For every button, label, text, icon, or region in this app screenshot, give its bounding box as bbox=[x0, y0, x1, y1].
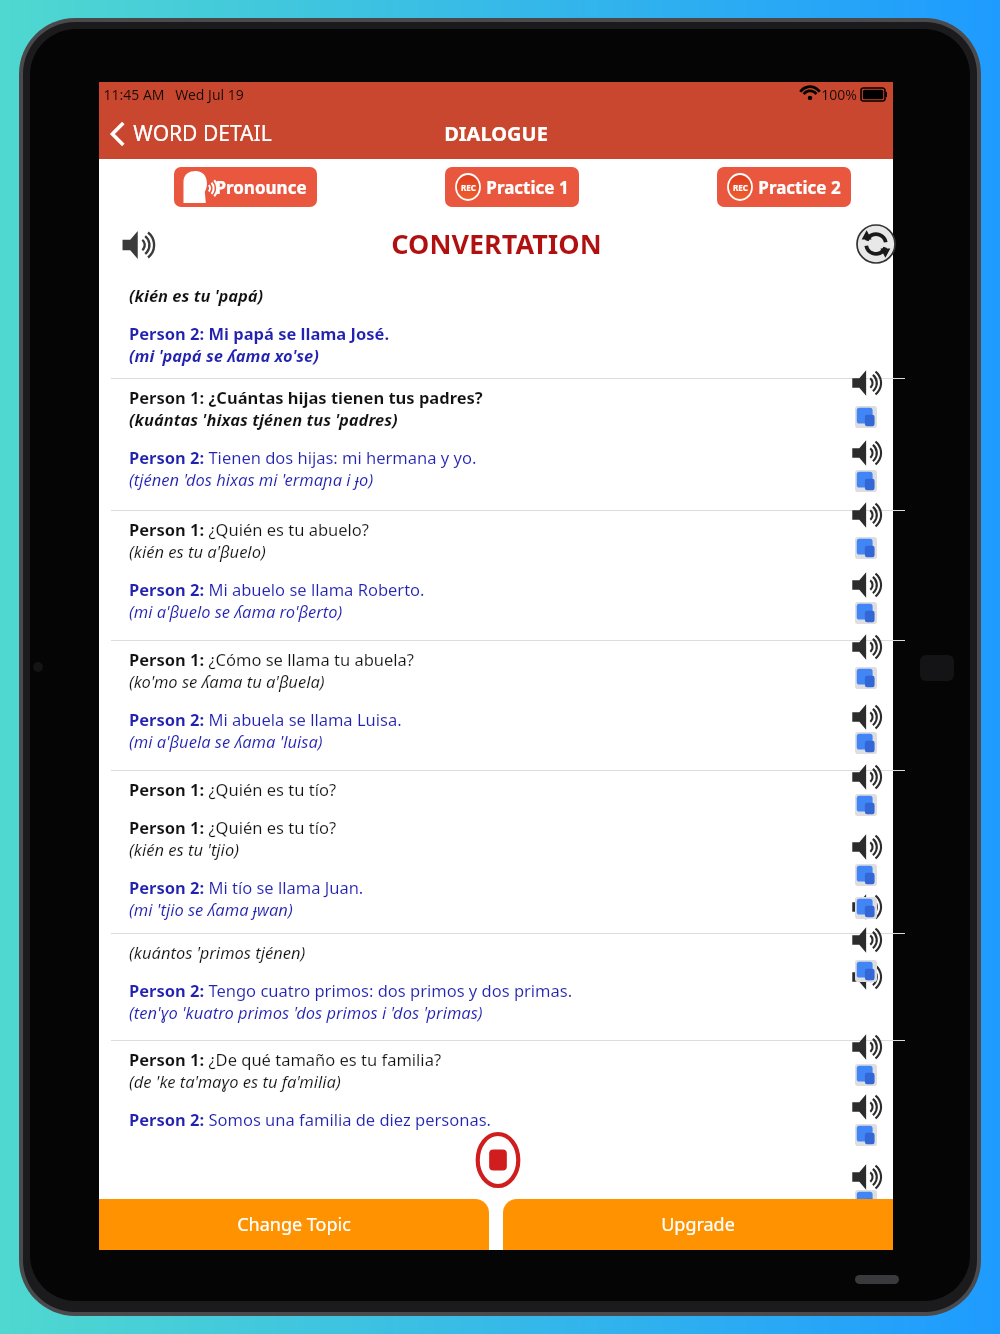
button[interactable]: REC bbox=[717, 167, 851, 207]
button[interactable]: Speak bbox=[851, 964, 877, 990]
staticText: Change Topic bbox=[237, 1212, 351, 1237]
staticText: DIALOGUE bbox=[444, 120, 548, 147]
staticText: (kién es tu 'papá) bbox=[129, 284, 264, 306]
button[interactable]: Speak bbox=[851, 440, 877, 466]
staticText: Person 2: Tienen dos hijas: mi hermana y… bbox=[129, 446, 477, 468]
button[interactable]: Google Translate bbox=[855, 864, 877, 886]
staticText: Person 1: ¿Quién es tu tío? bbox=[129, 778, 337, 800]
button[interactable]: Google Translate bbox=[855, 897, 877, 919]
button[interactable]: Pronounce bbox=[174, 167, 317, 207]
button[interactable]: WORD DETAIL bbox=[107, 113, 276, 154]
button[interactable]: Upgrade bbox=[503, 1199, 893, 1250]
staticText: Person 1: ¿Quién es tu tío? bbox=[129, 816, 337, 838]
button[interactable]: Google Translate bbox=[855, 1190, 877, 1212]
button[interactable]: (kuántos 'primos tjénen) bbox=[129, 939, 849, 1025]
staticText: (kuántos 'primos tjénen) bbox=[129, 941, 306, 963]
button[interactable]: Speak bbox=[851, 894, 877, 920]
staticText: (ten'ɣo 'kuatro primos 'dos primos i 'do… bbox=[129, 1001, 483, 1023]
staticText: Upgrade bbox=[661, 1212, 735, 1237]
button[interactable]: Speak bbox=[851, 704, 877, 730]
button[interactable]: Speak bbox=[851, 634, 877, 660]
button[interactable]: Speak bbox=[851, 572, 877, 598]
button[interactable]: Speak bbox=[851, 370, 877, 396]
staticText: REC bbox=[733, 182, 748, 193]
button[interactable]: (kién es tu 'papá) bbox=[129, 282, 849, 368]
button[interactable]: Stop recording bbox=[469, 1131, 527, 1189]
button[interactable]: Refresh bbox=[854, 222, 898, 266]
staticText: (ko'mo se ʎama tu a'βuela) bbox=[129, 670, 325, 692]
staticText: Person 1: ¿De qué tamaño es tu familia? bbox=[129, 1048, 442, 1070]
staticText: CONVERTATION bbox=[391, 225, 602, 262]
staticText: Person 2: Somos una familia de diez pers… bbox=[129, 1108, 491, 1130]
staticText: Wed Jul 19 bbox=[175, 85, 244, 104]
staticText: Person 2: Mi abuela se llama Luisa. bbox=[129, 708, 402, 730]
button[interactable]: Change Topic bbox=[99, 1199, 489, 1250]
button[interactable]: Google Translate bbox=[855, 667, 877, 689]
staticText: Person 2: Mi tío se llama Juan. bbox=[129, 876, 364, 898]
staticText: Pronounce bbox=[215, 176, 307, 199]
button[interactable]: Google Translate bbox=[855, 537, 877, 559]
staticText: Practice 2 bbox=[758, 176, 841, 199]
staticText: Practice 1 bbox=[486, 176, 569, 199]
button[interactable]: Google Translate bbox=[855, 1064, 877, 1086]
button[interactable]: Speak bbox=[851, 764, 877, 790]
staticText: Person 1: ¿Quién es tu abuelo? bbox=[129, 518, 369, 540]
button[interactable]: Google Translate bbox=[855, 1124, 877, 1146]
button[interactable]: Person 1: ¿Quién es tu tío? bbox=[129, 776, 849, 922]
button[interactable]: Google Translate bbox=[855, 406, 877, 428]
staticText: 11:45 AM bbox=[103, 85, 165, 104]
button[interactable]: REC bbox=[445, 167, 579, 207]
staticText: REC bbox=[461, 182, 476, 193]
button[interactable]: Person 1: ¿Cómo se llama tu abuela? bbox=[129, 646, 849, 754]
staticText: 100% bbox=[821, 85, 857, 104]
button[interactable]: Play audio bbox=[117, 226, 155, 264]
button[interactable]: Google Translate bbox=[855, 960, 877, 982]
button[interactable]: Google Translate bbox=[855, 602, 877, 624]
staticText: Person 1: ¿Cuántas hijas tienen tus padr… bbox=[129, 386, 483, 408]
staticText: (tjénen 'dos hixas mi 'ermaɲa i ɟo) bbox=[129, 468, 374, 490]
staticText: (mi a'βuelo se ʎama ro'βerto) bbox=[129, 600, 343, 622]
button[interactable]: Person 1: ¿Cuántas hijas tienen tus padr… bbox=[129, 384, 849, 492]
button[interactable]: Speak bbox=[851, 1034, 877, 1060]
button[interactable]: Speak bbox=[851, 502, 877, 528]
staticText: (kién es tu 'tjio) bbox=[129, 838, 239, 860]
button[interactable]: Speak bbox=[851, 1164, 877, 1190]
staticText: Person 1: ¿Cómo se llama tu abuela? bbox=[129, 648, 414, 670]
button[interactable]: Person 1: ¿De qué tamaño es tu familia? bbox=[129, 1046, 849, 1132]
button[interactable]: Speak bbox=[851, 1094, 877, 1120]
staticText: (mi a'βuela se ʎama 'luisa) bbox=[129, 730, 323, 752]
button[interactable]: Speak bbox=[851, 927, 877, 953]
staticText: (mi 'papá se ʎama xo'se) bbox=[129, 344, 319, 366]
staticText: Person 2: Mi papá se llama José. bbox=[129, 322, 390, 344]
button[interactable]: Google Translate bbox=[855, 470, 877, 492]
staticText: WORD DETAIL bbox=[133, 119, 272, 148]
staticText: Person 2: Tengo cuatro primos: dos primo… bbox=[129, 979, 573, 1001]
staticText: (mi 'tjio se ʎama ɟwan) bbox=[129, 898, 293, 920]
button[interactable]: Google Translate bbox=[855, 794, 877, 816]
button[interactable]: Person 1: ¿Quién es tu abuelo? bbox=[129, 516, 849, 624]
button[interactable]: Speak bbox=[851, 834, 877, 860]
staticText: (kuántas 'hixas tjénen tus 'padres) bbox=[129, 408, 398, 430]
staticText: (kién es tu a'βuelo) bbox=[129, 540, 266, 562]
staticText: Person 2: Mi abuelo se llama Roberto. bbox=[129, 578, 425, 600]
button[interactable]: Google Translate bbox=[855, 732, 877, 754]
staticText: (de 'ke ta'maɣo es tu fa'milia) bbox=[129, 1070, 341, 1092]
